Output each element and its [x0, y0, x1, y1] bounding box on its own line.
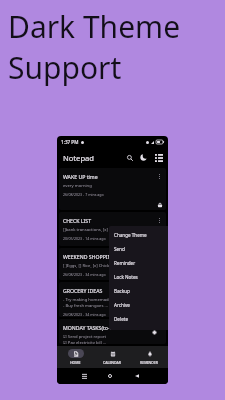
- button[interactable]: More options: [156, 173, 163, 180]
- staticText: REMINDER: [140, 360, 159, 365]
- staticText: Notepad: [63, 153, 94, 163]
- staticText: 20/05/2023 - 14 mins ago: [63, 236, 106, 241]
- staticText: Dark Theme: [8, 6, 181, 47]
- staticText: [ ]Eggs, [] Rice, [x] Chick: [63, 263, 110, 269]
- button[interactable]: Change layout: [153, 148, 165, 167]
- button[interactable]: GROCERY IDEAS: [59, 282, 166, 317]
- button[interactable]: Reminder: [109, 256, 168, 270]
- staticText: ☑ Pay electricity bill ...: [63, 340, 107, 344]
- staticText: - Try making homemade: [63, 297, 111, 303]
- button[interactable]: Back: [131, 368, 143, 384]
- staticText: CALENDAR: [103, 360, 122, 365]
- staticText: GROCERY IDEAS: [63, 287, 103, 294]
- staticText: Support: [8, 47, 122, 88]
- staticText: 1:37 PM: [61, 139, 79, 145]
- button[interactable]: CALENDAR: [94, 346, 131, 368]
- staticText: HOME: [70, 360, 81, 365]
- staticText: Delete: [114, 316, 128, 322]
- button[interactable]: REMINDER: [131, 346, 168, 368]
- button[interactable]: Toggle dark theme: [137, 148, 149, 167]
- button[interactable]: CHECK LIST: [59, 212, 166, 246]
- button[interactable]: More options: [156, 324, 163, 331]
- staticText: WEEKEND SHOPPING: [63, 253, 116, 260]
- staticText: []bank transactions, [x]: [63, 227, 108, 233]
- staticText: Backup: [114, 288, 130, 294]
- staticText: 26/08/2023 - 7 mins ago: [63, 192, 104, 197]
- staticText: every morning: [63, 183, 92, 189]
- button[interactable]: HOME: [57, 346, 94, 368]
- staticText: 26/08/2023 - 34 mins ago: [63, 312, 106, 317]
- staticText: Reminder: [114, 260, 136, 266]
- button[interactable]: Archive: [109, 298, 168, 312]
- button[interactable]: Change Theme: [109, 228, 168, 242]
- staticText: MONDAY TASKS(to-d: [63, 324, 113, 331]
- staticText: ☑ Send project report: [63, 334, 106, 340]
- button[interactable]: MONDAY TASKS(to-d: [59, 319, 166, 344]
- button[interactable]: Search: [124, 148, 136, 167]
- staticText: Change Theme: [114, 232, 147, 238]
- button[interactable]: WAKE UP time: [59, 168, 166, 210]
- button[interactable]: More options: [156, 217, 163, 224]
- button[interactable]: Backup: [109, 284, 168, 298]
- staticText: Lock Notes: [114, 274, 138, 280]
- staticText: Send: [114, 246, 125, 252]
- staticText: Archive: [114, 302, 130, 308]
- button[interactable]: Lock Notes: [109, 270, 168, 284]
- staticText: - Buy fresh mangoes ...: [63, 303, 108, 309]
- button[interactable]: Add note: [149, 327, 159, 337]
- button[interactable]: WEEKEND SHOPPING: [59, 248, 166, 280]
- staticText: 26/08/2023 - 34 mins ago: [63, 272, 106, 277]
- button[interactable]: Recent apps: [78, 368, 90, 384]
- staticText: CHECK LIST: [63, 217, 92, 224]
- staticText: WAKE UP time: [63, 173, 98, 180]
- button[interactable]: Home: [104, 368, 116, 384]
- button[interactable]: Delete: [109, 312, 168, 326]
- button[interactable]: Send: [109, 242, 168, 256]
